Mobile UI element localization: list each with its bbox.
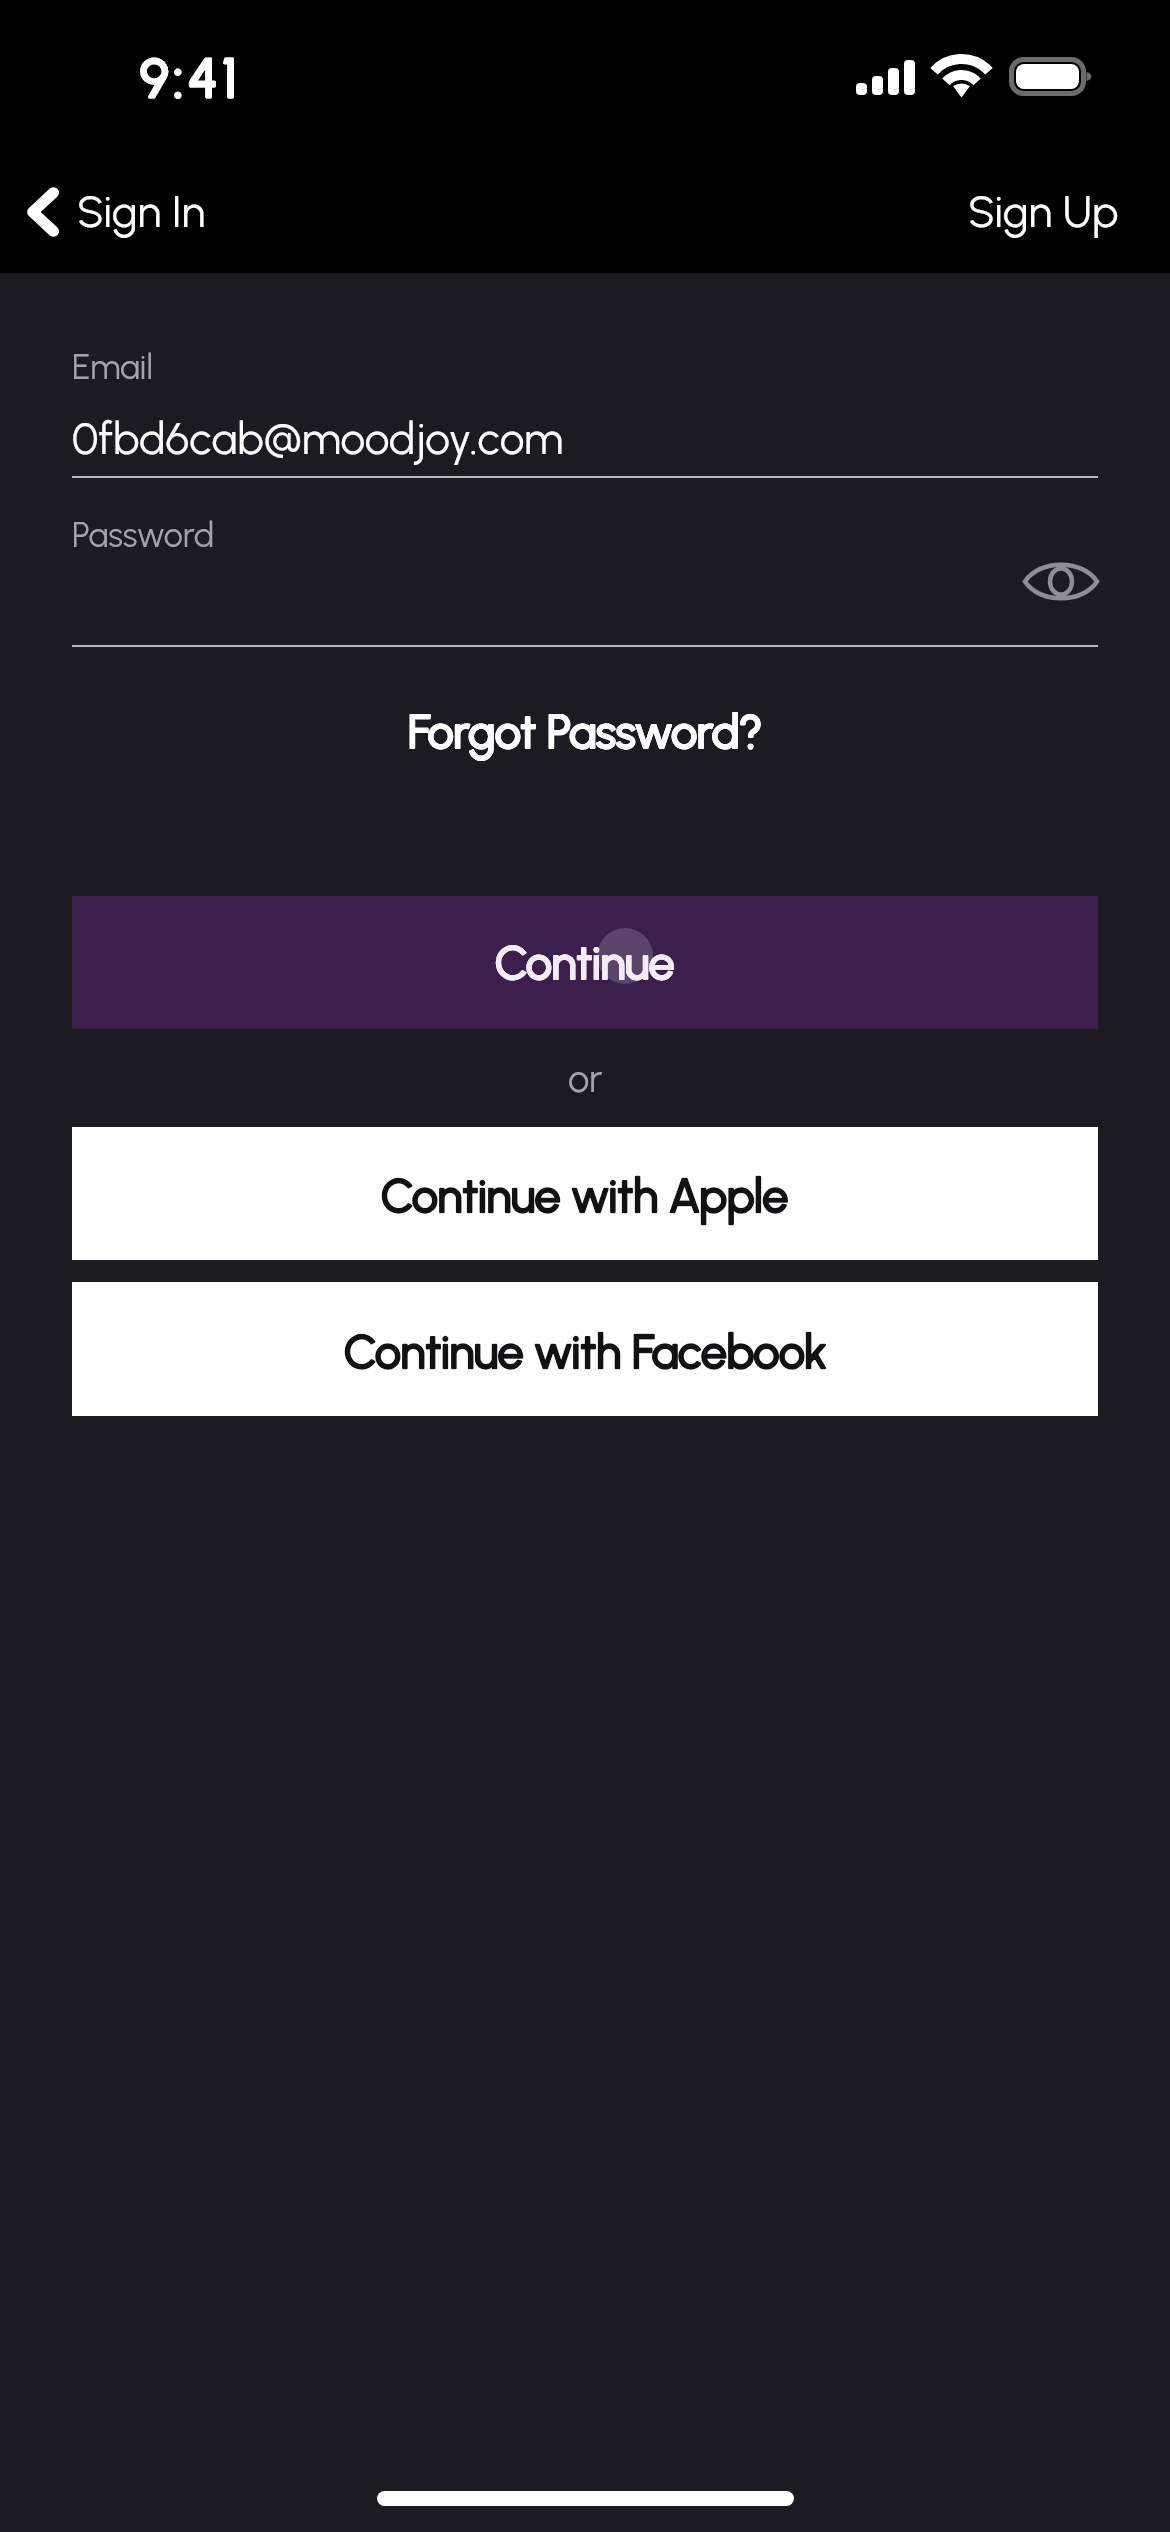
staticText: Forgot Password? <box>408 704 763 759</box>
button[interactable]: Show password <box>1013 537 1109 625</box>
button[interactable]: Sign Up <box>917 169 1170 254</box>
staticText: or <box>568 1056 603 1102</box>
staticText: Continue <box>495 935 675 990</box>
staticText: Password <box>72 515 215 556</box>
staticText: 9:41 <box>140 46 242 111</box>
button[interactable]: Continue <box>72 896 1098 1029</box>
staticText: 9:41 <box>140 46 242 111</box>
staticText: Continue with Facebook <box>344 1324 827 1379</box>
button[interactable]: Continue with Facebook <box>72 1282 1098 1416</box>
staticText: Continue <box>495 935 675 990</box>
button[interactable]: Forgot Password? <box>378 692 793 771</box>
button[interactable]: Continue with Apple <box>72 1127 1098 1260</box>
staticText: Continue with Facebook <box>344 1324 827 1379</box>
staticText: Continue with Apple <box>381 1168 789 1223</box>
staticText: 0fbd6cab@moodjoy.com <box>72 412 564 465</box>
staticText: Continue with Apple <box>381 1168 789 1223</box>
staticText: Sign In <box>77 185 206 238</box>
staticText: Forgot Password? <box>408 704 763 759</box>
staticText: Email <box>72 347 153 388</box>
button[interactable]: Sign In <box>0 171 224 252</box>
